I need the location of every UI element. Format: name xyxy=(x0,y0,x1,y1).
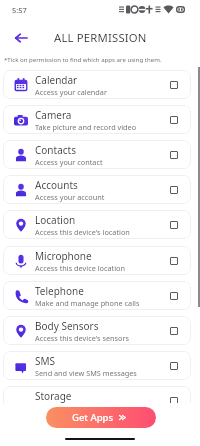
staticText: Location xyxy=(35,213,76,227)
staticText: 5:57 xyxy=(12,5,27,15)
staticText: Access this device location xyxy=(35,263,125,273)
button[interactable]: Camera checkbox xyxy=(170,116,178,124)
staticText: Access this device's sensors xyxy=(35,333,130,343)
button[interactable]: Accounts checkbox xyxy=(170,186,178,194)
button[interactable]: Camera xyxy=(3,105,191,134)
button[interactable]: Calendar xyxy=(3,70,191,99)
staticText: Get Apps xyxy=(72,411,114,424)
button[interactable]: Storage xyxy=(3,386,191,403)
button[interactable]: Microphone xyxy=(3,246,191,275)
staticText: SMS xyxy=(35,354,56,368)
staticText: Body Sensors xyxy=(35,319,99,333)
button[interactable]: Microphone checkbox xyxy=(170,257,178,265)
button[interactable]: Location checkbox xyxy=(170,221,178,229)
staticText: Make and manage phone calls xyxy=(35,298,140,308)
button[interactable]: Accounts xyxy=(3,175,191,204)
button[interactable]: Storage checkbox xyxy=(170,397,178,403)
button[interactable]: Telephone checkbox xyxy=(170,292,178,300)
button[interactable]: Body Sensors checkbox xyxy=(170,327,178,335)
button[interactable]: SMS checkbox xyxy=(170,362,178,370)
button[interactable]: Back xyxy=(10,27,31,48)
staticText: Take picture and record video xyxy=(35,122,137,132)
button[interactable]: Get Apps xyxy=(46,407,156,428)
staticText: Microphone xyxy=(35,249,92,263)
staticText: Access this device's location xyxy=(35,227,130,237)
staticText: Telephone xyxy=(35,284,84,298)
staticText: ALL PERMISSION xyxy=(54,30,147,45)
button[interactable]: Contacts checkbox xyxy=(170,151,178,159)
button[interactable]: Telephone xyxy=(3,281,191,310)
staticText: *Tick on permission to find which apps a… xyxy=(4,55,162,63)
button[interactable]: Calendar checkbox xyxy=(170,81,178,89)
staticText: Send and view SMS messages xyxy=(35,368,137,378)
button[interactable]: Body Sensors xyxy=(3,316,191,345)
staticText: Calendar xyxy=(35,73,78,87)
staticText: Access your calendar xyxy=(35,87,107,97)
button[interactable]: Location xyxy=(3,210,191,239)
staticText: Storage xyxy=(35,389,72,403)
staticText: Accounts xyxy=(35,178,78,192)
button[interactable]: Contacts xyxy=(3,140,191,169)
staticText: Camera xyxy=(35,108,72,122)
button[interactable]: SMS xyxy=(3,351,191,380)
staticText: Contacts xyxy=(35,143,76,157)
staticText: Access your contact xyxy=(35,157,103,167)
staticText: Access your account xyxy=(35,192,105,202)
